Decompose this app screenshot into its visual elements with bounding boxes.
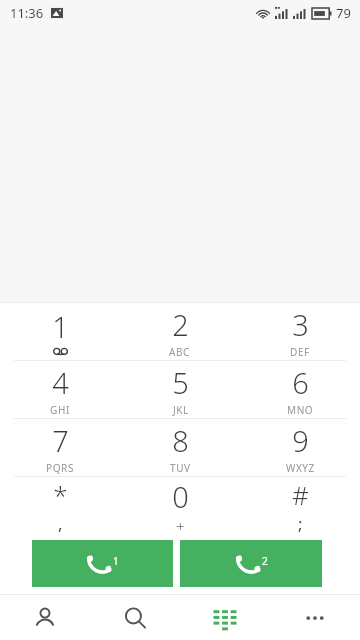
button[interactable]: Search	[90, 595, 180, 640]
button[interactable]: 4	[0, 361, 120, 418]
button[interactable]: 2	[120, 303, 240, 360]
staticText: WXYZ	[286, 461, 315, 475]
button[interactable]: 5	[120, 361, 240, 418]
button[interactable]: 3	[240, 303, 360, 360]
staticText: PQRS	[46, 461, 74, 475]
button[interactable]: Dialpad	[180, 595, 270, 640]
staticText: 3	[292, 305, 309, 344]
staticText: ,	[58, 512, 63, 534]
button[interactable]: More options	[270, 595, 360, 640]
staticText: JKL	[173, 403, 189, 417]
button[interactable]: #	[240, 477, 360, 534]
staticText: +	[176, 516, 185, 534]
staticText: #	[292, 477, 309, 512]
staticText: 2	[172, 305, 189, 344]
staticText: 9	[292, 421, 309, 460]
staticText: 6	[292, 363, 309, 402]
staticText: 1	[113, 554, 119, 568]
staticText: MNO	[287, 403, 314, 417]
staticText: 1	[52, 307, 69, 346]
staticText: 11:36	[10, 4, 44, 22]
button[interactable]: 7	[0, 419, 120, 476]
staticText: ;	[298, 512, 303, 534]
staticText: 2	[262, 554, 268, 568]
button[interactable]: Call with SIM 2	[180, 540, 322, 587]
staticText: *	[53, 477, 68, 512]
button[interactable]: 6	[240, 361, 360, 418]
button[interactable]: Call with SIM 1	[32, 540, 173, 587]
button[interactable]: 0	[120, 477, 240, 534]
button[interactable]: 9	[240, 419, 360, 476]
button[interactable]: 8	[120, 419, 240, 476]
staticText: 0	[172, 477, 189, 516]
staticText: ABC	[169, 345, 191, 359]
staticText: DEF	[290, 345, 310, 359]
staticText: 4	[52, 363, 69, 402]
staticText: 8	[172, 421, 189, 460]
staticText: 79	[336, 4, 351, 22]
staticText: TUV	[170, 461, 191, 475]
staticText: GHI	[50, 403, 70, 417]
staticText: 5	[172, 363, 189, 402]
button[interactable]: 1	[0, 303, 120, 360]
button[interactable]: *	[0, 477, 120, 534]
staticText: 7	[52, 421, 69, 460]
button[interactable]: Contacts	[0, 595, 90, 640]
